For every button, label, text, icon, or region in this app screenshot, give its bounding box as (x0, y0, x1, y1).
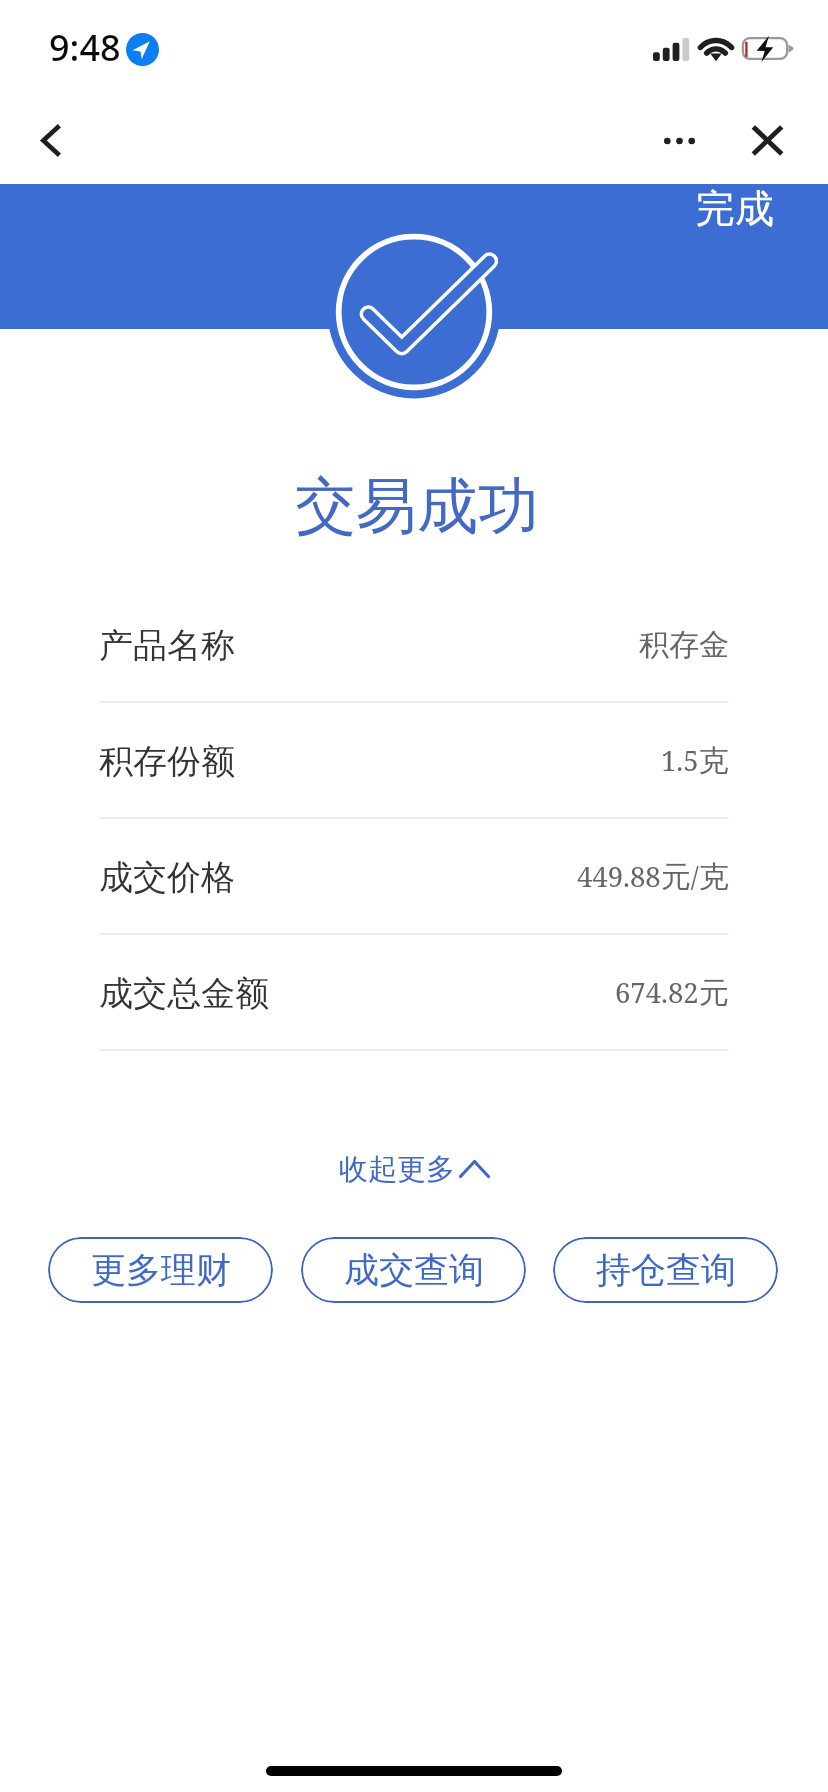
button[interactable]: 积存份额 (0, 703, 828, 819)
staticText: 收起更多 (339, 1151, 455, 1188)
staticText: 持仓查询 (596, 1248, 736, 1292)
staticText: 积存份额 (99, 740, 235, 783)
staticText: 产品名称 (99, 624, 235, 667)
button[interactable]: 产品名称 (0, 587, 828, 703)
button[interactable]: 成交总金额 (0, 935, 828, 1051)
staticText: 成交价格 (99, 856, 235, 899)
button[interactable]: 更多理财 (48, 1237, 273, 1303)
button[interactable]: 持仓查询 (553, 1237, 778, 1303)
staticText: 完成 (696, 184, 774, 233)
staticText: 积存金 (639, 626, 729, 664)
staticText: 674.82元 (615, 974, 729, 1012)
staticText: 成交查询 (344, 1248, 484, 1292)
button[interactable]: More options (643, 105, 715, 177)
button[interactable]: Back (14, 104, 86, 176)
staticText: 成交总金额 (99, 972, 269, 1015)
staticText: 9:48 (49, 23, 121, 72)
staticText: 1.5克 (661, 742, 729, 780)
button[interactable]: Close (731, 104, 803, 176)
staticText: 更多理财 (91, 1248, 231, 1292)
staticText: 交易成功 (3, 468, 828, 545)
button[interactable]: 完成 (676, 184, 794, 246)
button[interactable]: 收起更多 (0, 1143, 828, 1195)
button[interactable]: 成交价格 (0, 819, 828, 935)
button[interactable]: 成交查询 (301, 1237, 526, 1303)
staticText: 449.88元/克 (577, 858, 729, 896)
